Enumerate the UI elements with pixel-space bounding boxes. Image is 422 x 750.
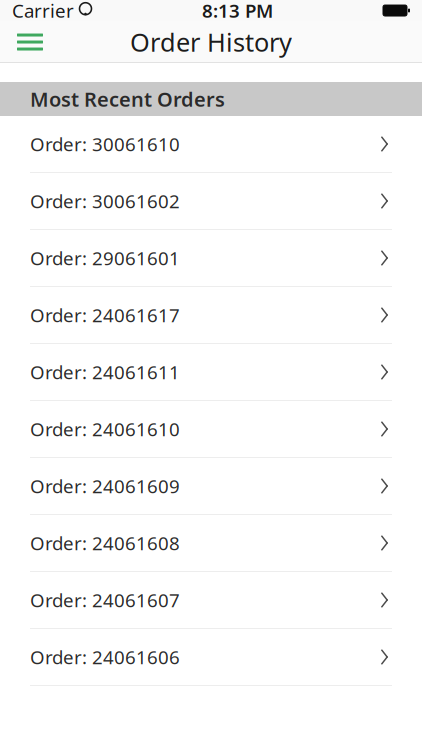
- button[interactable]: Order: 24061611: [0, 344, 422, 401]
- button[interactable]: Order: 24061617: [0, 287, 422, 344]
- staticText: Order: 24061606: [30, 645, 180, 669]
- staticText: Order: 30061602: [30, 189, 180, 213]
- button[interactable]: Order: 24061606: [0, 629, 422, 686]
- staticText: Carrier: [12, 0, 74, 23]
- staticText: Order: 29061601: [30, 246, 180, 270]
- button[interactable]: Order: 30061610: [0, 116, 422, 173]
- staticText: Order History: [130, 25, 292, 59]
- staticText: Order: 24061617: [30, 303, 180, 327]
- staticText: 8:13 PM: [202, 0, 273, 23]
- button[interactable]: Order: 24061609: [0, 458, 422, 515]
- staticText: Order: 24061607: [30, 588, 180, 612]
- button[interactable]: Menu: [8, 21, 52, 63]
- staticText: Order: 30061610: [30, 132, 180, 156]
- staticText: Most Recent Orders: [30, 86, 225, 112]
- staticText: Order: 24061608: [30, 531, 180, 555]
- button[interactable]: Order: 24061610: [0, 401, 422, 458]
- button[interactable]: Order: 29061601: [0, 230, 422, 287]
- staticText: Order: 24061610: [30, 417, 180, 441]
- button[interactable]: Order: 24061608: [0, 515, 422, 572]
- button[interactable]: Order: 24061607: [0, 572, 422, 629]
- button[interactable]: Order: 30061602: [0, 173, 422, 230]
- staticText: Order: 24061609: [30, 474, 180, 498]
- staticText: Order: 24061611: [30, 360, 180, 384]
